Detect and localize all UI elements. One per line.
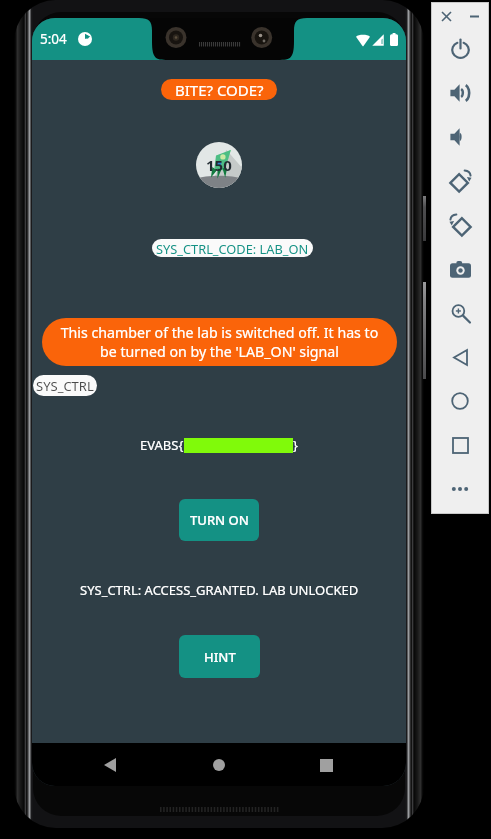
button[interactable]: Minimize	[463, 5, 485, 27]
button[interactable]: More	[432, 467, 488, 511]
button[interactable]: Back	[432, 335, 488, 379]
staticText: SYS_CTRL: ACCESS_GRANTED. LAB UNLOCKED	[80, 581, 359, 599]
staticText: This chamber of the lab is switched off.…	[58, 323, 381, 361]
button[interactable]: Volume down	[432, 115, 488, 159]
button[interactable]: Home	[432, 379, 488, 423]
staticText: EVABS{	[140, 436, 184, 454]
button[interactable]: Volume up	[432, 71, 488, 115]
button[interactable]: Power	[432, 27, 488, 71]
button[interactable]: SYS_CTRL_CODE: LAB_ON	[152, 239, 313, 257]
button[interactable]: Zoom	[432, 291, 488, 335]
button[interactable]: Rotate left	[432, 159, 488, 203]
button[interactable]: Recents	[303, 750, 349, 780]
button[interactable]: SYS_CTRL	[33, 375, 97, 396]
staticText: SYS_CTRL_CODE: LAB_ON	[156, 240, 309, 257]
button[interactable]: TURN ON	[179, 499, 259, 541]
button[interactable]: Close	[435, 5, 457, 27]
button[interactable]: HINT	[179, 635, 260, 678]
staticText: TURN ON	[190, 511, 249, 529]
button[interactable]: Overview	[432, 423, 488, 467]
staticText: SYS_CTRL	[36, 377, 94, 395]
button[interactable]: Screenshot	[432, 247, 488, 291]
button[interactable]: BITE? CODE?	[161, 79, 277, 100]
staticText: HINT	[204, 648, 236, 666]
staticText: BITE? CODE?	[175, 80, 264, 100]
staticText: }	[293, 436, 298, 454]
staticText: 150	[206, 155, 232, 175]
button[interactable]: Rotate right	[432, 203, 488, 247]
staticText: 5:04	[40, 30, 67, 48]
button[interactable]: Home	[196, 750, 242, 780]
button[interactable]: Back	[87, 750, 133, 780]
